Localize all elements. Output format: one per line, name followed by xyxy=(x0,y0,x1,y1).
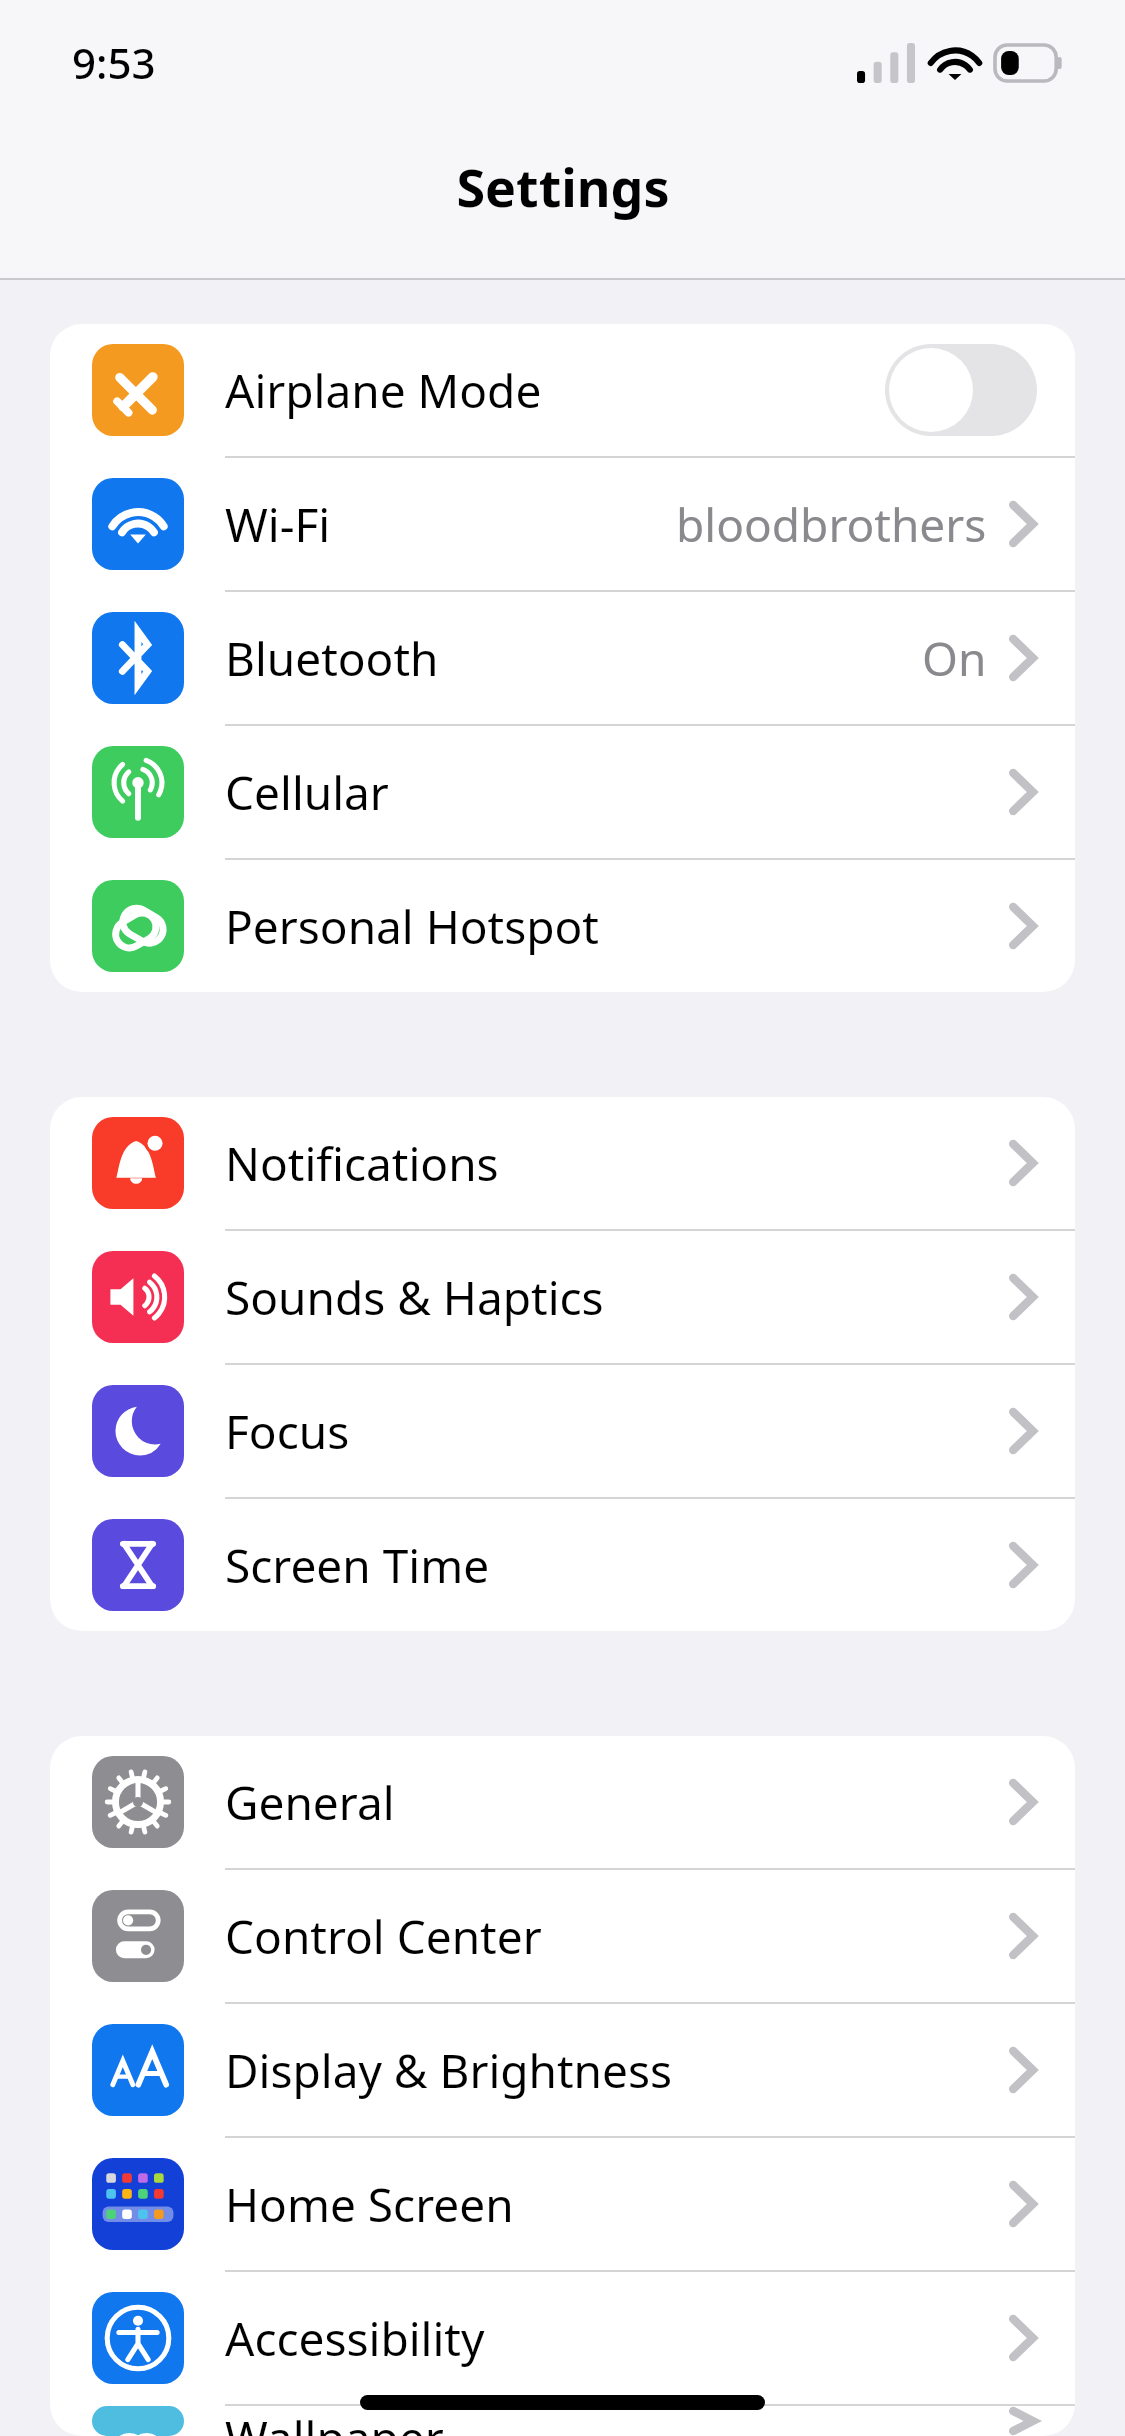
button[interactable]: Sounds & Haptics xyxy=(50,1231,1075,1363)
staticText: Display & Brightness xyxy=(225,2039,1009,2102)
button[interactable]: Home Screen xyxy=(50,2138,1075,2270)
button[interactable]: Cellular xyxy=(50,726,1075,858)
button[interactable]: Notifications xyxy=(50,1097,1075,1229)
button[interactable]: Screen Time xyxy=(50,1499,1075,1631)
button[interactable]: Airplane Mode xyxy=(50,324,1075,456)
staticText: Wi-Fi xyxy=(225,493,676,556)
staticText: On xyxy=(922,627,987,690)
staticText: Notifications xyxy=(225,1132,1009,1195)
staticText: Home Screen xyxy=(225,2173,1009,2236)
staticText: Sounds & Haptics xyxy=(225,1266,1009,1329)
staticText: Control Center xyxy=(225,1905,1009,1968)
staticText: 9:53 xyxy=(72,34,156,91)
button[interactable]: Display & Brightness xyxy=(50,2004,1075,2136)
staticText: Focus xyxy=(225,1400,1009,1463)
staticText: bloodbrothers xyxy=(676,493,987,556)
staticText: Personal Hotspot xyxy=(225,895,1009,958)
button[interactable]: Accessibility xyxy=(50,2272,1075,2404)
button[interactable]: Wallpaper xyxy=(50,2406,1075,2436)
staticText: General xyxy=(225,1771,1009,1834)
staticText: Settings xyxy=(456,151,670,222)
button[interactable]: General xyxy=(50,1736,1075,1868)
button[interactable]: Personal Hotspot xyxy=(50,860,1075,992)
button[interactable]: Wi-Fi xyxy=(50,458,1075,590)
staticText: Accessibility xyxy=(225,2307,1009,2370)
staticText: Airplane Mode xyxy=(225,359,885,422)
button[interactable]: Focus xyxy=(50,1365,1075,1497)
staticText: Screen Time xyxy=(225,1534,1009,1597)
staticText: Cellular xyxy=(225,761,1009,824)
staticText: Wallpaper xyxy=(225,2406,1009,2436)
button[interactable]: Control Center xyxy=(50,1870,1075,2002)
staticText: Bluetooth xyxy=(225,627,922,690)
button[interactable]: Bluetooth xyxy=(50,592,1075,724)
button[interactable]: Airplane Mode toggle xyxy=(885,344,1037,436)
